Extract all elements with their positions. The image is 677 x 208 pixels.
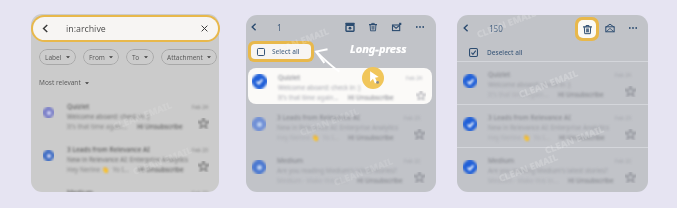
- staticText: It's that time again...: [488, 90, 549, 99]
- button[interactable]: Delete: [578, 20, 596, 38]
- staticText: Medium: [488, 156, 515, 165]
- staticText: CLEAN EMAIL: [111, 98, 174, 132]
- button[interactable]: Medium: [246, 146, 436, 189]
- button[interactable]: Archive: [345, 22, 355, 32]
- staticText: It's that time again...: [67, 122, 128, 131]
- button[interactable]: Back: [249, 22, 259, 32]
- staticText: Hi Unsubscribe: [558, 90, 604, 99]
- staticText: Long-press: [350, 41, 407, 56]
- staticText: Hi Unsubscribe: [348, 133, 394, 142]
- staticText: Welcome aboard: check in :): [278, 83, 361, 92]
- staticText: Hi Unsubscribe: [348, 93, 394, 102]
- button[interactable]: Star: [416, 91, 426, 101]
- button[interactable]: Label: [39, 49, 76, 65]
- staticText: Are you reading Medium's latest stories?: [488, 166, 608, 175]
- staticText: Hi Unsubscribe: [559, 133, 605, 142]
- staticText: Medium · Make this in...: [277, 176, 348, 185]
- button[interactable]: Quizlet: [457, 60, 648, 103]
- staticText: Feb 24: [406, 74, 423, 81]
- button[interactable]: Mark as unread: [605, 23, 615, 33]
- button[interactable]: Delete: [368, 22, 378, 32]
- staticText: CLEAN EMAIL: [268, 24, 331, 58]
- staticText: Feb 23: [192, 146, 209, 153]
- button[interactable]: Medium: [457, 146, 648, 189]
- button[interactable]: Medium: [31, 178, 219, 192]
- button[interactable]: From: [83, 49, 119, 65]
- staticText: Hi Unsubscribe: [138, 165, 184, 174]
- staticText: Medium: [67, 188, 94, 192]
- staticText: in:archive: [66, 23, 106, 35]
- staticText: Hey Nerine 👋 Yo I...: [277, 133, 339, 142]
- staticText: 3 Leads from Relevance AI: [488, 113, 571, 122]
- staticText: CLEAN EMAIL: [332, 154, 395, 188]
- staticText: 1: [277, 22, 282, 33]
- staticText: Hi Unsubscribe: [357, 176, 403, 185]
- button[interactable]: More options: [415, 22, 425, 32]
- button[interactable]: Star: [625, 172, 636, 183]
- button[interactable]: Star: [625, 129, 636, 140]
- staticText: From: [89, 53, 105, 62]
- staticText: CLEAN EMAIL: [475, 15, 538, 40]
- button[interactable]: Star: [625, 86, 636, 97]
- staticText: Quizlet: [488, 70, 511, 79]
- staticText: Hi Unsubscribe: [137, 122, 183, 131]
- button[interactable]: Star: [414, 172, 425, 183]
- button[interactable]: Select all: [251, 44, 311, 59]
- button[interactable]: Back: [40, 23, 51, 34]
- button[interactable]: Clear search: [200, 24, 209, 33]
- button[interactable]: Deselect all: [469, 48, 523, 57]
- staticText: New in Relevance AI: Enterprise Analytic…: [277, 123, 399, 132]
- staticText: To: [132, 53, 140, 62]
- button[interactable]: More options: [628, 23, 638, 33]
- staticText: CLEAN EMAIL: [543, 122, 606, 156]
- staticText: 3 Leads from Relevance AI: [277, 113, 360, 122]
- staticText: Hey Nerine 👋 Yo I...: [488, 133, 550, 142]
- staticText: Hey Nerine 👋 Yo I...: [67, 165, 129, 174]
- staticText: Feb 22: [192, 189, 209, 192]
- button[interactable]: Star: [198, 118, 209, 129]
- button[interactable]: Quizlet: [248, 68, 432, 104]
- staticText: Hi Unsubscribe: [568, 176, 614, 185]
- staticText: CLEAN EMAIL: [131, 143, 194, 177]
- staticText: Select all: [272, 47, 300, 56]
- staticText: CLEAN EMAIL: [298, 104, 361, 138]
- staticText: CLEAN EMAIL: [517, 66, 580, 100]
- staticText: Welcome aboard: check in :): [488, 80, 571, 89]
- button[interactable]: Star: [198, 161, 209, 172]
- staticText: Quizlet: [278, 73, 301, 82]
- staticText: Are you reading Medium's latest stories?: [277, 166, 397, 175]
- staticText: Attachment: [167, 53, 203, 62]
- staticText: New in Relevance AI: Enterprise Analytic…: [488, 123, 610, 132]
- button[interactable]: Most relevant: [39, 78, 89, 87]
- button[interactable]: Back: [461, 23, 471, 33]
- staticText: New in Relevance AI: Enterprise Analytic…: [67, 155, 189, 164]
- staticText: 3 Leads from Relevance AI: [67, 145, 150, 154]
- button[interactable]: Mark as unread: [392, 22, 402, 32]
- staticText: Most relevant: [39, 78, 81, 87]
- button[interactable]: Back: [33, 17, 218, 40]
- staticText: CLEAN EMAIL: [497, 150, 560, 184]
- staticText: Label: [45, 53, 62, 62]
- staticText: Feb 24: [192, 103, 209, 110]
- button[interactable]: Quizlet: [31, 92, 219, 135]
- staticText: Medium · Make this in...: [488, 176, 559, 185]
- staticText: 150: [489, 23, 503, 34]
- button[interactable]: Star: [414, 129, 425, 140]
- button[interactable]: 3 Leads from Relevance AI: [457, 103, 648, 146]
- staticText: Quizlet: [67, 102, 90, 111]
- button[interactable]: To: [126, 49, 154, 65]
- staticText: Medium: [277, 156, 304, 165]
- button[interactable]: 3 Leads from Relevance AI: [246, 103, 436, 146]
- staticText: Welcome aboard: check in :): [67, 112, 150, 121]
- button[interactable]: Attachment: [161, 49, 217, 65]
- staticText: It's that time again...: [278, 93, 339, 102]
- button[interactable]: 3 Leads from Relevance AI: [31, 135, 219, 178]
- staticText: Deselect all: [487, 48, 523, 57]
